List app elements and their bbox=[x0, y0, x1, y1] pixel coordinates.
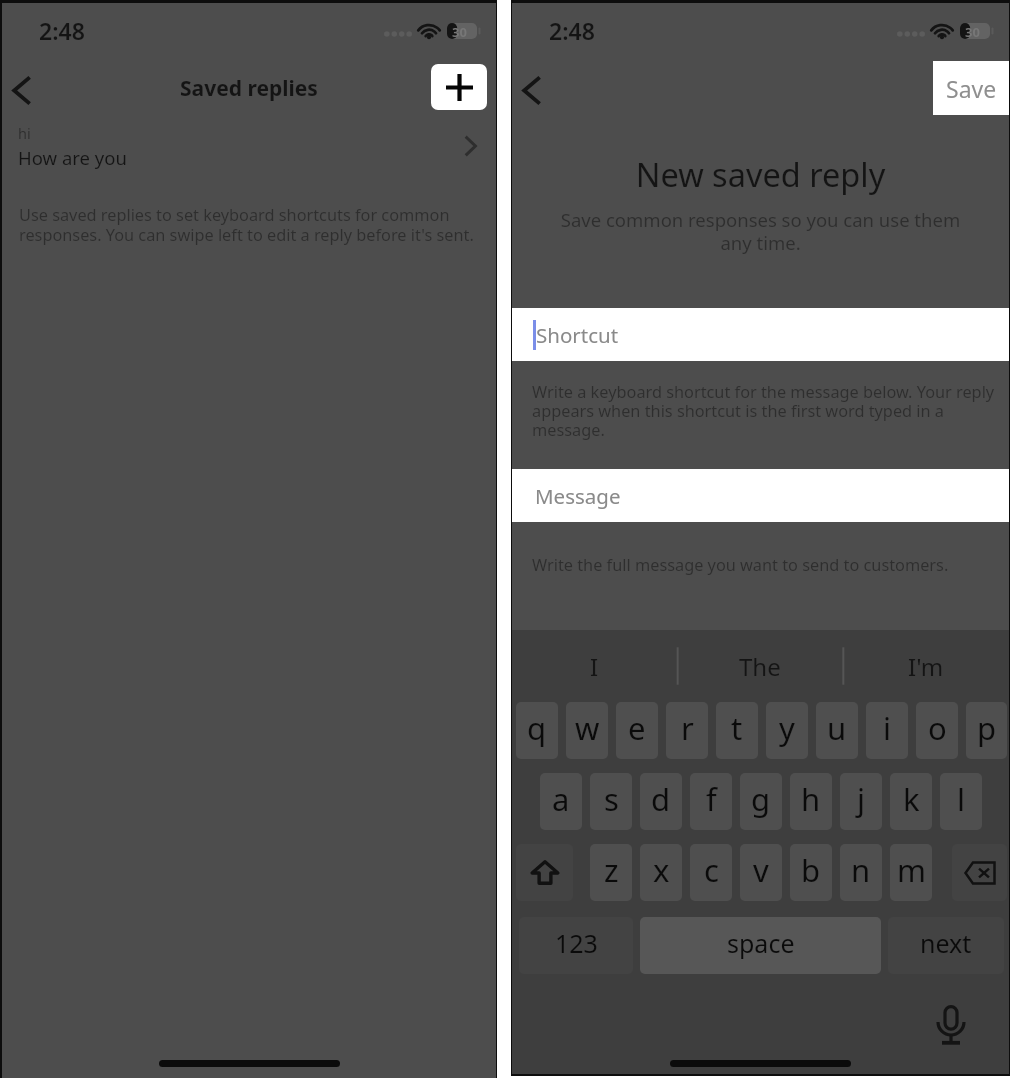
staticText: space bbox=[727, 926, 795, 960]
button[interactable]: Backspace bbox=[952, 844, 1007, 901]
staticText: Write the full message you want to send … bbox=[532, 554, 949, 576]
button[interactable]: u bbox=[816, 702, 858, 759]
staticText: 30 bbox=[965, 23, 980, 39]
button[interactable]: d bbox=[640, 773, 682, 830]
button[interactable]: j bbox=[840, 773, 882, 830]
button[interactable]: c bbox=[690, 844, 732, 901]
button[interactable]: space bbox=[640, 917, 881, 974]
button[interactable]: 123 bbox=[519, 917, 633, 974]
staticText: The bbox=[739, 650, 781, 683]
button[interactable]: next bbox=[888, 917, 1004, 974]
staticText: y bbox=[779, 707, 795, 749]
staticText: s bbox=[604, 778, 619, 820]
staticText: w bbox=[575, 707, 600, 749]
staticText: r bbox=[681, 707, 694, 749]
button[interactable]: I'm bbox=[843, 630, 1009, 702]
button[interactable]: Back bbox=[512, 63, 558, 117]
button[interactable]: h bbox=[790, 773, 832, 830]
button[interactable]: x bbox=[640, 844, 682, 901]
staticText: hi bbox=[18, 123, 31, 143]
button[interactable]: n bbox=[840, 844, 882, 901]
staticText: l bbox=[957, 778, 965, 820]
staticText: a bbox=[552, 778, 570, 820]
staticText: Use saved replies to set keyboard shortc… bbox=[19, 204, 488, 246]
button[interactable]: k bbox=[890, 773, 932, 830]
staticText: Message bbox=[535, 482, 621, 510]
staticText: v bbox=[753, 849, 769, 891]
staticText: t bbox=[731, 707, 743, 749]
button[interactable]: y bbox=[766, 702, 808, 759]
staticText: Saved replies bbox=[180, 74, 318, 103]
staticText: m bbox=[897, 849, 926, 891]
button[interactable]: v bbox=[740, 844, 782, 901]
button[interactable]: o bbox=[916, 702, 958, 759]
staticText: f bbox=[706, 778, 717, 820]
button[interactable]: r bbox=[666, 702, 708, 759]
button[interactable]: m bbox=[890, 844, 932, 901]
button[interactable]: The bbox=[677, 630, 843, 702]
button[interactable]: Shift bbox=[516, 844, 573, 901]
button[interactable]: l bbox=[940, 773, 982, 830]
staticText: z bbox=[604, 849, 619, 891]
staticText: next bbox=[920, 926, 972, 960]
staticText: Save bbox=[946, 73, 997, 104]
button[interactable]: q bbox=[516, 702, 558, 759]
button[interactable]: Save bbox=[933, 61, 1009, 115]
staticText: h bbox=[801, 778, 821, 820]
staticText: How are you bbox=[18, 145, 127, 170]
button[interactable]: g bbox=[740, 773, 782, 830]
staticText: 123 bbox=[555, 926, 598, 960]
staticText: e bbox=[628, 707, 646, 749]
staticText: Write a keyboard shortcut for the messag… bbox=[532, 381, 997, 440]
staticText: I'm bbox=[908, 650, 944, 683]
button[interactable]: Back bbox=[0, 63, 48, 117]
staticText: c bbox=[704, 849, 719, 891]
staticText: Save common responses so you can use the… bbox=[554, 207, 967, 255]
staticText: o bbox=[928, 707, 947, 749]
button[interactable]: f bbox=[690, 773, 732, 830]
staticText: 2:48 bbox=[549, 15, 595, 46]
button[interactable]: w bbox=[566, 702, 608, 759]
staticText: g bbox=[751, 778, 771, 820]
staticText: b bbox=[801, 849, 821, 891]
button[interactable]: a bbox=[540, 773, 582, 830]
staticText: Shortcut bbox=[536, 321, 619, 349]
button[interactable]: p bbox=[966, 702, 1007, 759]
button[interactable]: z bbox=[590, 844, 632, 901]
staticText: j bbox=[857, 778, 865, 820]
staticText: u bbox=[827, 707, 847, 749]
staticText: d bbox=[651, 778, 671, 820]
button[interactable]: b bbox=[790, 844, 832, 901]
button[interactable]: Voice input bbox=[929, 1002, 973, 1050]
button[interactable]: s bbox=[590, 773, 632, 830]
staticText: I bbox=[590, 650, 599, 683]
staticText: p bbox=[977, 707, 997, 749]
button[interactable]: i bbox=[866, 702, 908, 759]
button[interactable]: e bbox=[616, 702, 658, 759]
button[interactable]: hi bbox=[2, 115, 496, 177]
staticText: 2:48 bbox=[39, 15, 85, 46]
button[interactable]: t bbox=[716, 702, 758, 759]
staticText: q bbox=[527, 707, 547, 749]
staticText: New saved reply bbox=[512, 152, 1009, 196]
button[interactable]: Add saved reply bbox=[431, 64, 487, 110]
staticText: n bbox=[851, 849, 871, 891]
staticText: x bbox=[653, 849, 670, 891]
staticText: i bbox=[883, 707, 891, 749]
staticText: 30 bbox=[452, 23, 467, 39]
staticText: k bbox=[903, 778, 920, 820]
